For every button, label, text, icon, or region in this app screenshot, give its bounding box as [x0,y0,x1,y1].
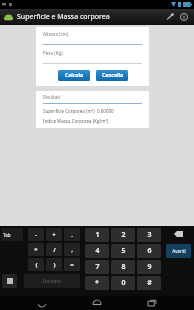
button[interactable]: 5 [111,244,135,258]
button[interactable]: 7 [85,260,109,274]
staticText: 2 [121,230,126,240]
button[interactable]: 6 [137,244,161,258]
button[interactable]: ) [46,258,62,271]
staticText: 1 [95,230,100,240]
staticText: / [53,246,56,254]
button[interactable]: , [64,243,80,256]
staticText: * [34,246,38,254]
button[interactable]: Tools [163,10,177,24]
staticText: , [71,246,73,254]
staticText: Altezza (cm) [43,31,69,37]
button[interactable]: Indice Massa Corporea (Kg/m²) [43,118,142,124]
button[interactable]: Tab [1,228,23,241]
button[interactable]: Recent apps [139,296,165,310]
button[interactable]: 3 [137,228,161,242]
staticText: 0 [121,278,126,288]
staticText: 8 [121,262,126,272]
button[interactable]: Avanti [166,244,191,258]
button[interactable]: + [46,228,62,241]
button[interactable]: - [28,228,44,241]
staticText: Cancella [102,72,123,79]
staticText: Peso (Kg) [43,50,63,56]
button[interactable]: Italiano [24,274,80,288]
button[interactable]: = [64,258,80,271]
staticText: 7 [95,262,100,272]
button[interactable]: . [64,228,80,241]
staticText: Tab [3,232,11,238]
staticText: # [147,278,152,288]
button[interactable]: Home [84,296,110,310]
button[interactable]: Superficie Corporea (m²) [43,108,142,114]
button[interactable]: Back [29,296,55,310]
staticText: ) [53,261,56,269]
button[interactable]: / [46,243,62,256]
button[interactable]: Up [3,12,14,23]
staticText: . [71,231,73,239]
button[interactable]: # [137,276,161,290]
staticText: 6 [147,246,152,256]
staticText: 9 [147,262,152,272]
staticText: Risultati [43,94,60,100]
button[interactable]: Cancella [96,70,128,81]
button[interactable]: Symbols [2,274,17,288]
staticText: Indice Massa Corporea (Kg/m²) [43,118,109,124]
button[interactable]: 0 [111,276,135,290]
button[interactable]: * [85,276,109,290]
staticText: Italiano [43,278,61,285]
staticText: = [70,261,74,269]
button[interactable]: 1 [85,228,109,242]
staticText: - [35,231,37,239]
staticText: 0.00000 [97,108,114,114]
staticText: * [95,278,99,288]
button[interactable]: 4 [85,244,109,258]
staticText: 4 [95,246,100,256]
button[interactable]: Backspace [166,228,190,240]
button[interactable]: 8 [111,260,135,274]
button[interactable]: Calcola [58,70,90,81]
staticText: 3 [147,230,152,240]
button[interactable]: 2 [111,228,135,242]
button[interactable]: Info [177,10,191,24]
staticText: ( [35,261,38,269]
button[interactable]: 9 [137,260,161,274]
button[interactable]: * [28,243,44,256]
staticText: Avanti [172,248,186,254]
button[interactable]: ( [28,258,44,271]
staticText: Superficie Corporea (m²) [43,108,95,114]
staticText: + [52,231,56,239]
staticText: Calcola [65,72,83,79]
staticText: 5 [121,246,126,256]
staticText: Superficie e Massa corporea [17,12,163,22]
